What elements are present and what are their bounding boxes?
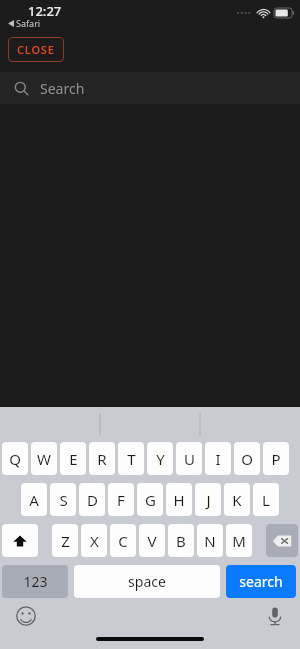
staticText: Search (40, 79, 85, 98)
staticText: space (128, 572, 166, 591)
button[interactable]: H (166, 483, 192, 516)
button[interactable]: D (79, 483, 105, 516)
staticText: K (232, 490, 242, 510)
button[interactable]: Y (147, 442, 173, 475)
button[interactable]: Dictation (263, 604, 287, 628)
button[interactable]: O (234, 442, 260, 475)
button[interactable]: A (21, 483, 47, 516)
button[interactable]: X (81, 524, 107, 557)
staticText: J (206, 490, 211, 510)
button[interactable]: P (263, 442, 289, 475)
staticText: N (204, 531, 216, 551)
button[interactable]: R (89, 442, 115, 475)
button[interactable]: N (197, 524, 223, 557)
button[interactable]: Emoji (14, 604, 38, 628)
staticText: P (271, 449, 281, 469)
staticText: M (232, 531, 246, 551)
button[interactable]: B (168, 524, 194, 557)
staticText: C (118, 531, 128, 551)
button[interactable]: U (176, 442, 202, 475)
staticText: CLOSE (17, 42, 55, 57)
staticText: Safari (16, 17, 41, 29)
staticText: S (59, 490, 68, 510)
button[interactable]: F (108, 483, 134, 516)
staticText: G (145, 490, 156, 510)
button[interactable]: Q (2, 442, 28, 475)
button[interactable]: I (205, 442, 231, 475)
staticText: V (147, 531, 157, 551)
staticText: I (215, 449, 221, 469)
button[interactable]: Search (0, 72, 300, 104)
staticText: T (127, 449, 136, 469)
staticText: A (29, 490, 39, 510)
button[interactable]: C (110, 524, 136, 557)
staticText: 123 (23, 572, 48, 591)
button[interactable]: CLOSE (8, 37, 64, 62)
staticText: E (69, 449, 78, 469)
button[interactable]: E (60, 442, 86, 475)
staticText: Z (61, 531, 70, 551)
staticText: F (117, 490, 125, 510)
staticText: D (87, 490, 98, 510)
button[interactable]: S (50, 483, 76, 516)
button[interactable]: G (137, 483, 163, 516)
staticText: U (184, 449, 195, 469)
button[interactable]: M (226, 524, 252, 557)
staticText: B (176, 531, 186, 551)
staticText: X (90, 531, 99, 551)
button[interactable]: J (195, 483, 221, 516)
button[interactable]: 123 (2, 565, 68, 598)
staticText: R (97, 449, 107, 469)
staticText: O (241, 449, 253, 469)
staticText: L (262, 490, 270, 510)
button[interactable]: search (226, 565, 296, 598)
button[interactable]: V (139, 524, 165, 557)
staticText: 12:27 (28, 2, 62, 20)
button[interactable]: W (31, 442, 57, 475)
staticText: Y (156, 449, 165, 469)
button[interactable]: Backspace (266, 524, 298, 557)
button[interactable]: L (253, 483, 279, 516)
staticText: W (37, 449, 51, 469)
staticText: H (173, 490, 185, 510)
staticText: search (239, 572, 283, 591)
button[interactable]: Z (52, 524, 78, 557)
button[interactable]: K (224, 483, 250, 516)
button[interactable]: T (118, 442, 144, 475)
button[interactable]: space (74, 565, 220, 598)
button[interactable]: Shift (2, 524, 38, 557)
staticText: Q (9, 449, 21, 469)
